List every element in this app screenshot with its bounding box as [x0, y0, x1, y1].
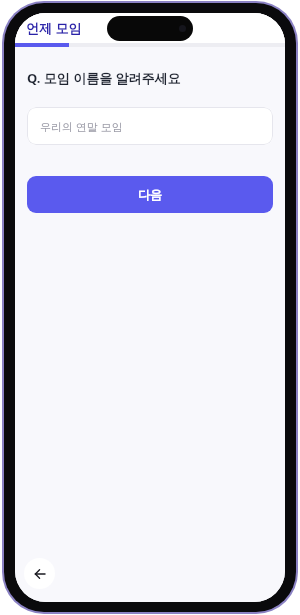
button[interactable]: 우리의 연말 모임: [27, 107, 273, 145]
button[interactable]: Back: [24, 558, 55, 589]
staticText: 다음: [138, 187, 162, 202]
staticText: Q. 모임 이름을 알려주세요: [27, 69, 181, 87]
button[interactable]: 언제 모임: [26, 19, 82, 37]
button[interactable]: 다음: [27, 176, 273, 213]
staticText: 우리의 연말 모임: [40, 119, 123, 134]
